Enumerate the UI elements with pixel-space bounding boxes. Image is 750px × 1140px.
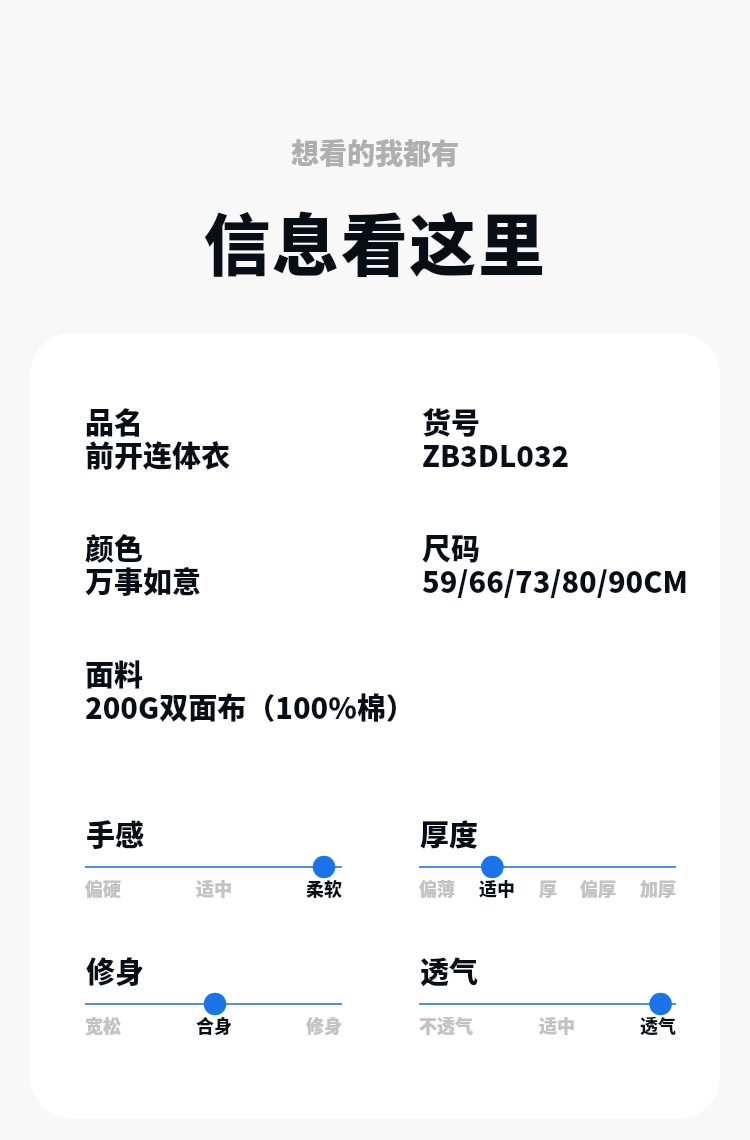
staticText: 品名 前开连体衣 xyxy=(85,400,231,476)
staticText: 适中 xyxy=(539,1012,575,1038)
staticText: 加厚 xyxy=(640,875,676,901)
staticText: 偏薄 xyxy=(419,875,455,901)
button[interactable]: 货号 ZB3DL032 xyxy=(422,400,570,476)
button[interactable]: 品名 前开连体衣 xyxy=(85,400,231,476)
staticText: 手感 xyxy=(86,812,145,854)
staticText: 宽松 xyxy=(85,1012,121,1038)
staticText: 适中 xyxy=(196,875,232,901)
button[interactable]: 面料 200G双面布（100%棉） xyxy=(85,652,415,728)
staticText: 信息看这里 xyxy=(0,192,750,289)
staticText: 柔软 xyxy=(306,875,342,901)
staticText: 面料 200G双面布（100%棉） xyxy=(85,652,415,728)
button[interactable]: 颜色 万事如意 xyxy=(85,526,202,602)
staticText: 厚 xyxy=(539,875,557,901)
staticText: 适中 xyxy=(479,875,515,901)
button[interactable]: 尺码 59/66/73/80/90CM xyxy=(422,526,689,602)
staticText: 想看的我都有 xyxy=(0,132,750,173)
staticText: 合身 xyxy=(196,1012,232,1038)
staticText: 透气 xyxy=(640,1012,676,1038)
staticText: 颜色 万事如意 xyxy=(85,526,202,602)
staticText: 货号 ZB3DL032 xyxy=(422,400,570,476)
button[interactable]: 修身: 合身 xyxy=(85,949,342,1039)
staticText: 透气 xyxy=(420,949,479,991)
staticText: 修身 xyxy=(306,1012,342,1038)
staticText: 厚度 xyxy=(420,812,479,854)
staticText: 不透气 xyxy=(419,1012,473,1038)
staticText: 修身 xyxy=(86,949,145,991)
button[interactable]: 手感: 柔软 xyxy=(85,812,342,902)
staticText: 偏厚 xyxy=(580,875,616,901)
button[interactable]: 透气: 透气 xyxy=(419,949,676,1039)
staticText: 尺码 59/66/73/80/90CM xyxy=(422,526,689,602)
button[interactable]: 厚度: 适中 xyxy=(419,812,676,902)
staticText: 偏硬 xyxy=(85,875,121,901)
